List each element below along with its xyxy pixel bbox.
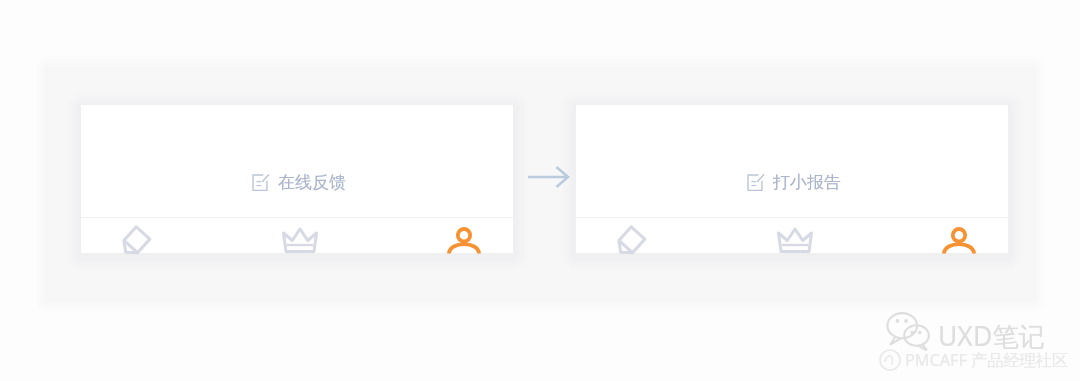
button[interactable]: Rank bbox=[777, 222, 813, 258]
button[interactable]: Profile bbox=[941, 221, 977, 257]
button[interactable]: Edit bbox=[116, 225, 152, 261]
button[interactable]: 在线反馈 bbox=[83, 166, 515, 198]
button[interactable]: 打小报告 bbox=[578, 166, 1010, 198]
button[interactable]: Rank bbox=[282, 222, 318, 258]
staticText: PMCAFF 产品经理社区 bbox=[905, 349, 1069, 371]
button[interactable]: Edit bbox=[611, 225, 647, 261]
staticText: 在线反馈 bbox=[278, 172, 346, 193]
button[interactable]: Profile bbox=[446, 221, 482, 257]
staticText: 打小报告 bbox=[773, 172, 841, 193]
staticText: UXD笔记 bbox=[938, 318, 1046, 354]
